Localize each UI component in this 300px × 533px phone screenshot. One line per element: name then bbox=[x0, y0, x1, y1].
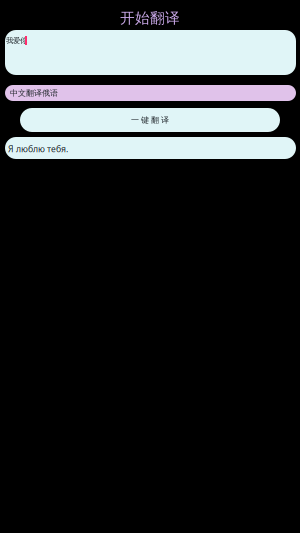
staticText: 我爱你 bbox=[6, 36, 27, 45]
staticText: 中文翻译俄语 bbox=[10, 88, 58, 98]
staticText: Я люблю тебя. bbox=[8, 143, 68, 155]
staticText: 开始翻译 bbox=[120, 9, 180, 27]
button[interactable]: 中文翻译俄语 bbox=[5, 85, 296, 101]
button[interactable]: 一 键 翻 译 bbox=[20, 108, 280, 132]
staticText: 一 键 翻 译 bbox=[131, 115, 169, 125]
button[interactable]: Я люблю тебя. bbox=[5, 137, 296, 159]
button[interactable]: 我爱你 bbox=[5, 30, 296, 75]
